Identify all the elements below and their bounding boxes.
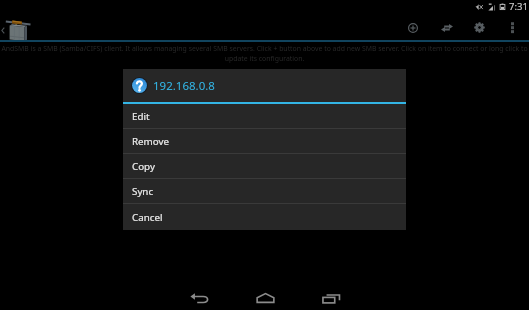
staticText: Sync (132, 185, 154, 198)
staticText: Copy (132, 160, 155, 173)
button[interactable]: Add server (396, 15, 430, 40)
staticText: 192.168.0.8 (153, 78, 215, 94)
staticText: Edit (132, 110, 150, 123)
staticText: 7:31 (509, 0, 528, 13)
staticText: Cancel (132, 211, 163, 224)
button[interactable]: Remove (123, 129, 406, 154)
button[interactable]: Recents (298, 286, 364, 310)
button[interactable]: Settings (463, 15, 496, 40)
button[interactable]: Edit (123, 104, 406, 129)
staticText: Remove (132, 135, 170, 148)
button[interactable]: Home (232, 286, 298, 310)
button[interactable]: Sync (123, 179, 406, 204)
button[interactable]: Transfer (430, 15, 463, 40)
button[interactable]: More options (496, 15, 529, 40)
staticText: AndSMB is a SMB (Samba/CIFS) client. It … (0, 44, 529, 63)
button[interactable]: Copy (123, 154, 406, 179)
button[interactable]: Cancel (123, 204, 406, 230)
button[interactable]: Back (166, 286, 232, 310)
button[interactable]: Navigate up (0, 15, 31, 42)
